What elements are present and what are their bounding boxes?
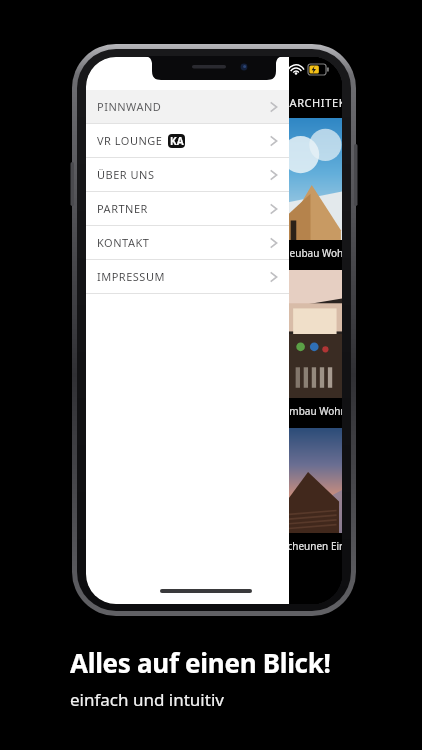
button[interactable]: [282, 270, 342, 398]
button[interactable]: [282, 428, 342, 533]
button[interactable]: PINNWAND: [86, 90, 289, 123]
staticText: einfach und intuitiv: [70, 688, 224, 711]
staticText: VR LOUNGE: [97, 133, 163, 148]
staticText: KA: [170, 134, 184, 148]
staticText: Neubau Wohnhaus Nürnberg: [282, 246, 342, 260]
button[interactable]: ÜBER UNS: [86, 158, 289, 191]
staticText: Alles auf einen Blick!: [70, 645, 331, 680]
staticText: PINNWAND: [97, 99, 162, 114]
staticText: KA ARCHITEKTUR: [271, 95, 342, 110]
button[interactable]: KONTAKT: [86, 226, 289, 259]
button[interactable]: VR LOUNGE: [86, 124, 289, 157]
staticText: Scheunen Einfahrt: [282, 539, 342, 553]
staticText: Umbau Wohnhaus Bamberg: [282, 404, 342, 418]
staticText: IMPRESSUM: [97, 269, 165, 284]
button[interactable]: PARTNER: [86, 192, 289, 225]
button[interactable]: [282, 118, 342, 240]
staticText: ÜBER UNS: [97, 167, 155, 182]
staticText: KONTAKT: [97, 235, 150, 250]
button[interactable]: IMPRESSUM: [86, 260, 289, 293]
staticText: PARTNER: [97, 201, 148, 216]
